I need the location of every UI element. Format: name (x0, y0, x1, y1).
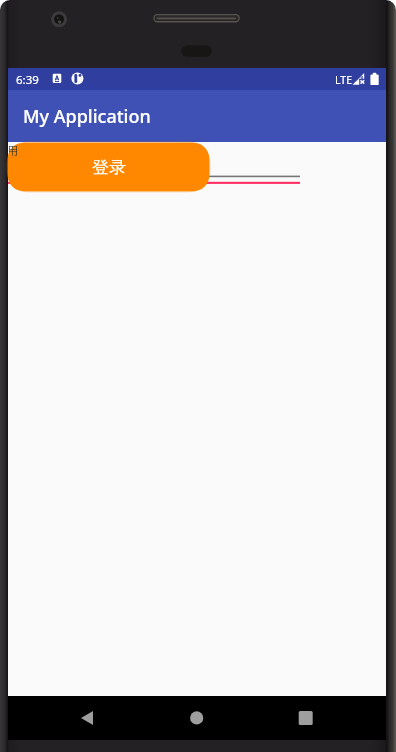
button[interactable]: Back (8, 696, 134, 740)
staticText: 6:39 (16, 72, 39, 88)
button[interactable]: 登录 (8, 143, 209, 191)
staticText: My Application (23, 104, 151, 129)
button[interactable]: Home (134, 696, 260, 740)
staticText: 用户 (8, 144, 20, 158)
staticText: LTE (335, 73, 352, 87)
button[interactable]: Recent apps (260, 696, 386, 740)
staticText: 登录 (92, 157, 126, 178)
